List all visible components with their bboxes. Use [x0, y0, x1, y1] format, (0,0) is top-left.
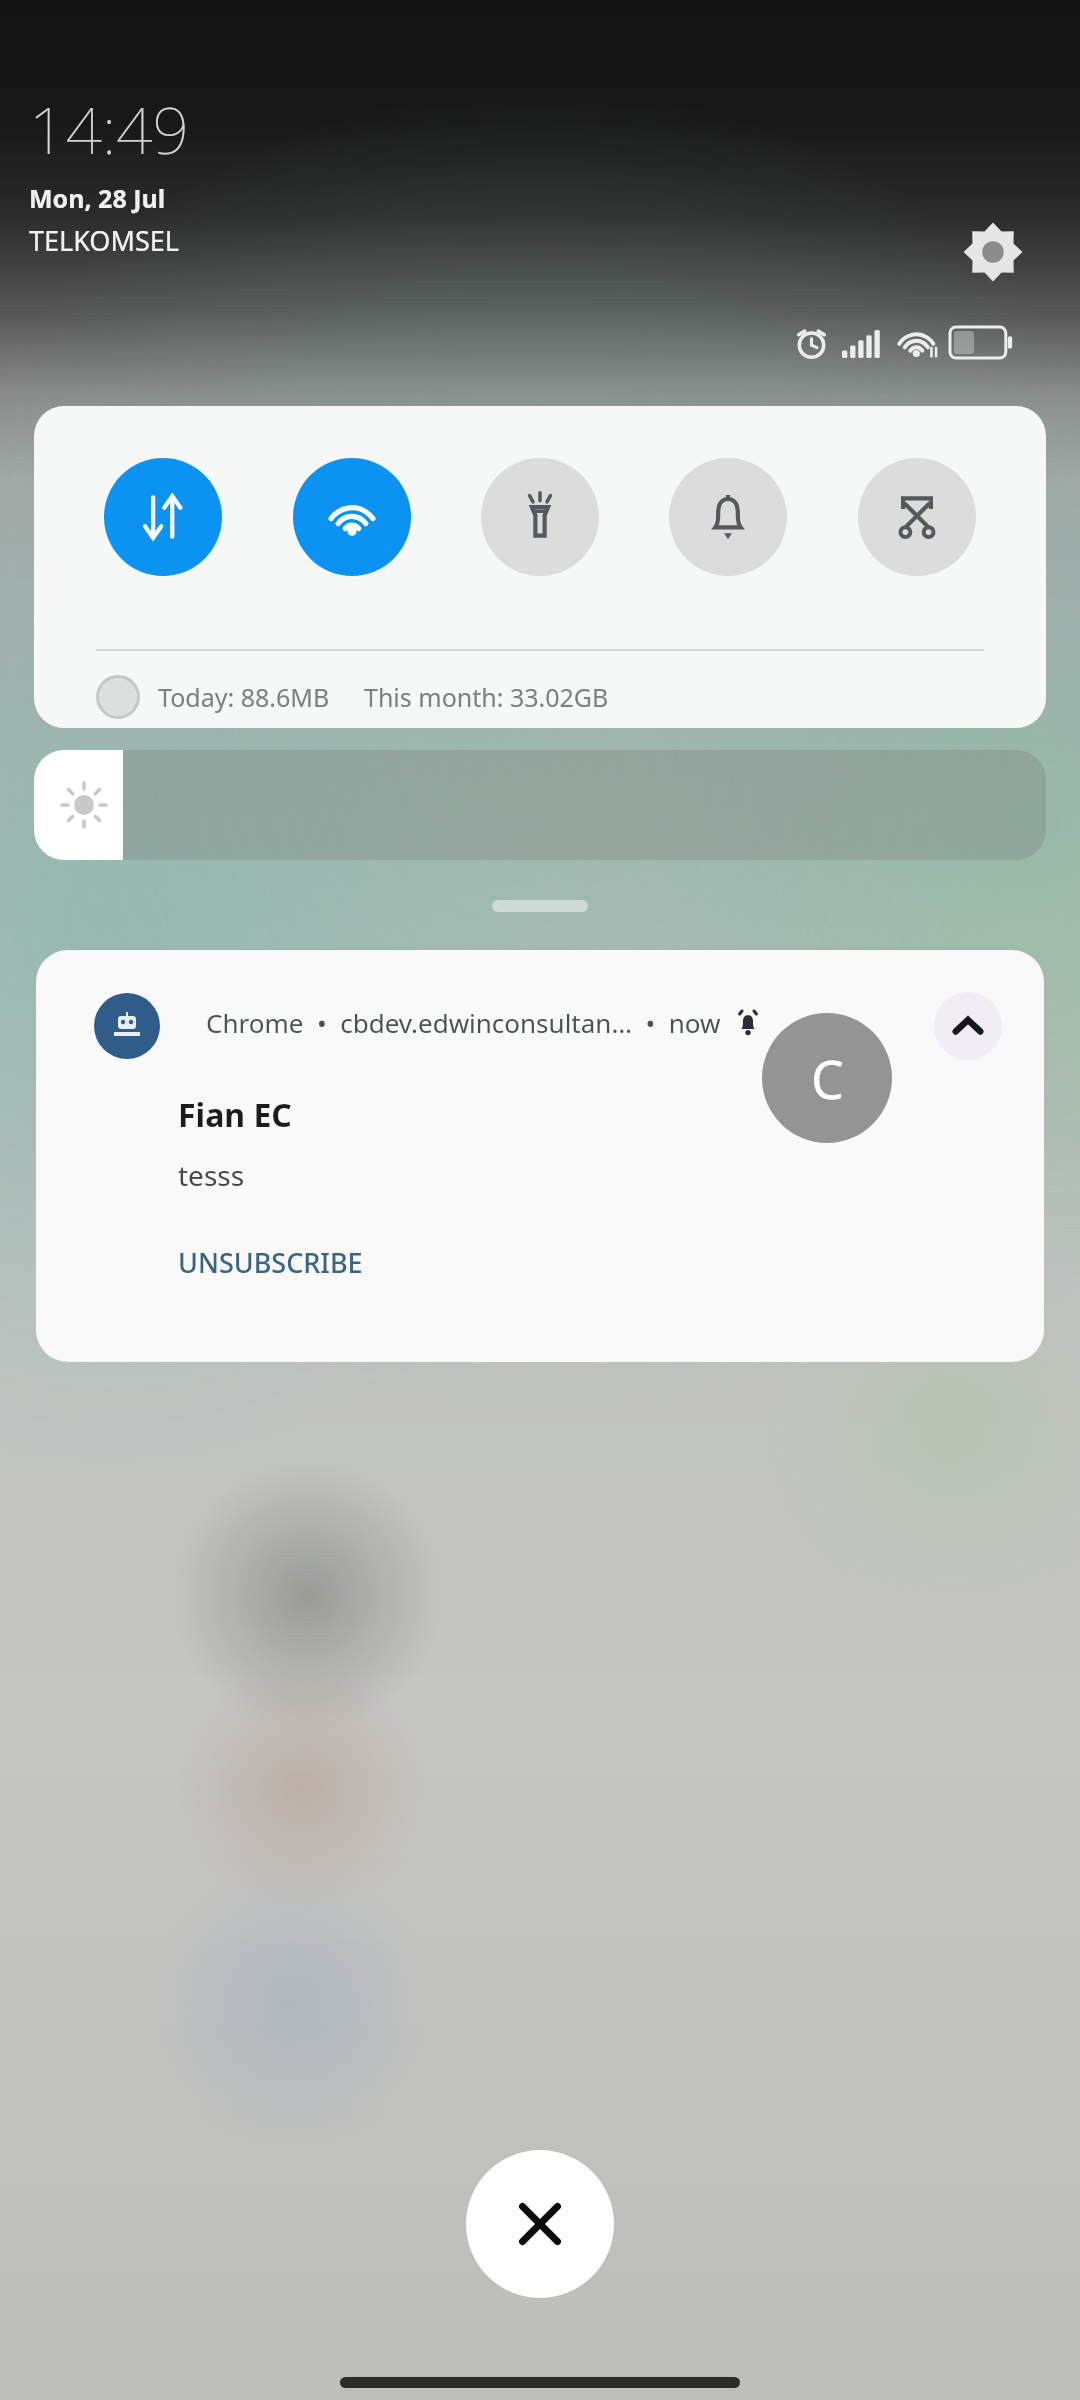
staticText: UNSUBSCRIBE — [178, 1244, 363, 1281]
staticText: C — [811, 1043, 844, 1114]
button[interactable]: Settings — [963, 222, 1023, 282]
staticText: TELKOMSEL — [29, 222, 179, 259]
staticText: Mon, 28 Jul — [29, 181, 166, 215]
staticText: Chrome • cbdev.edwinconsultan… • now — [206, 1005, 721, 1040]
button[interactable]: Mobile data — [104, 458, 222, 576]
button[interactable]: Close — [466, 2150, 614, 2298]
button[interactable]: Do not disturb — [669, 458, 787, 576]
button[interactable]: Today: 88.6MB — [96, 675, 609, 719]
staticText: This month: 33.02GB — [364, 680, 609, 714]
button[interactable]: Brightness — [34, 750, 1046, 860]
button[interactable]: Collapse — [934, 992, 1002, 1060]
button[interactable]: Wi-Fi — [293, 458, 411, 576]
staticText: 14:49 — [29, 86, 189, 173]
staticText: Fian EC — [178, 1093, 292, 1137]
staticText: tesss — [178, 1156, 245, 1194]
button[interactable]: Flashlight — [481, 458, 599, 576]
staticText: Today: 88.6MB — [158, 680, 330, 714]
button[interactable]: UNSUBSCRIBE — [172, 1236, 369, 1289]
button[interactable]: Chrome • cbdev.edwinconsultan… • now — [36, 950, 1044, 1362]
button[interactable]: Screenshot — [858, 458, 976, 576]
